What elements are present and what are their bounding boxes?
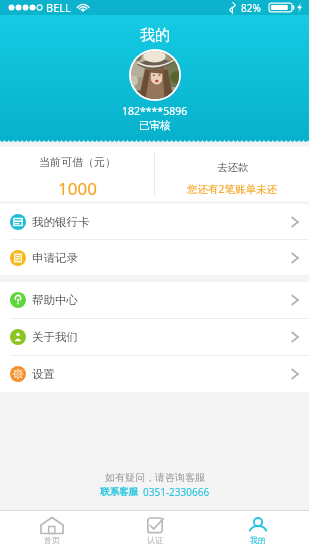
- staticText: 我的: [250, 535, 266, 545]
- button[interactable]: 关于我们: [0, 319, 309, 355]
- staticText: 182****5896: [122, 104, 188, 118]
- staticText: 您还有2笔账单未还: [187, 182, 278, 196]
- button[interactable]: 我的: [206, 511, 309, 550]
- staticText: 1000: [58, 177, 97, 200]
- staticText: 0351-2330666: [143, 485, 210, 499]
- staticText: 联系客服: [100, 486, 138, 498]
- button[interactable]: 设置: [0, 356, 309, 392]
- button[interactable]: 我的银行卡: [0, 204, 309, 239]
- button[interactable]: 首页: [0, 511, 103, 550]
- staticText: BELL: [46, 0, 71, 15]
- button[interactable]: 联系客服: [100, 485, 210, 499]
- staticText: 82%: [241, 1, 261, 15]
- staticText: 设置: [32, 367, 55, 381]
- staticText: 首页: [44, 535, 60, 545]
- staticText: 我的: [140, 26, 170, 45]
- button[interactable]: 去还款: [155, 147, 309, 201]
- staticText: 关于我们: [32, 330, 78, 344]
- staticText: 当前可借（元）: [39, 155, 116, 169]
- staticText: 去还款: [217, 161, 249, 174]
- staticText: 帮助中心: [32, 293, 78, 307]
- staticText: 已审核: [139, 119, 171, 132]
- staticText: 申请记录: [32, 251, 78, 265]
- button[interactable]: 帮助中心: [0, 282, 309, 318]
- staticText: 我的银行卡: [32, 215, 90, 229]
- staticText: 认证: [147, 535, 163, 545]
- button[interactable]: 当前可借（元）: [0, 147, 154, 201]
- button[interactable]: 申请记录: [0, 240, 309, 275]
- staticText: 如有疑问，请咨询客服: [105, 471, 205, 484]
- button[interactable]: 认证: [103, 511, 206, 550]
